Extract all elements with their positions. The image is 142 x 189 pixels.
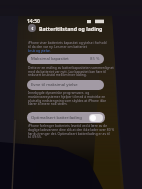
staticText: 85 %	[90, 56, 100, 62]
staticText: iPhone viser batteriets kapasitet og yte…	[28, 40, 107, 44]
staticText: maskinvaresystemer hjelper til med å mot…	[28, 94, 106, 98]
button[interactable]: Evne til maksimal ytelse	[27, 80, 104, 90]
staticText: klarer å levere nok strøm.	[28, 101, 68, 105]
staticText: før du trenger det. Optimalisert batteri…	[28, 131, 110, 135]
staticText: kl. 09:55.	[28, 134, 42, 138]
staticText: Evne til maksimal ytelse	[31, 82, 78, 88]
staticText: plutselig nedstengning som skyldes at iP…	[28, 98, 107, 102]
staticText: Optimalisert batterilading	[31, 115, 82, 121]
staticText: redusert brukstid mellom hver lading.	[28, 72, 87, 76]
staticText: med da batteriet var nytt. Lav kapasitet…	[28, 69, 107, 73]
staticText: Batteritilstand og lading	[39, 25, 103, 32]
staticText: 14:50	[27, 18, 40, 25]
button[interactable]: Maksimal kapasitet	[27, 54, 104, 64]
button[interactable]: Back	[28, 24, 36, 32]
staticText: bruk og ytelse.	[28, 48, 51, 52]
staticText: Innebygde dynamiske programvare- og	[28, 90, 90, 94]
staticText: Maksimal kapasitet	[31, 56, 69, 62]
staticText: Dette er en måling av batterikapasiteten…	[28, 65, 114, 69]
staticText: iPhone forlenger batteriets levetid ved …	[28, 123, 107, 127]
staticText: daglige ladevanene dine slik at den ikke…	[28, 127, 115, 131]
staticText: til da den var ny. Les mer om batteriet	[28, 44, 87, 48]
button[interactable]: Optimalisert batterilading	[89, 114, 103, 122]
button[interactable]: Optimalisert batterilading	[27, 112, 105, 123]
